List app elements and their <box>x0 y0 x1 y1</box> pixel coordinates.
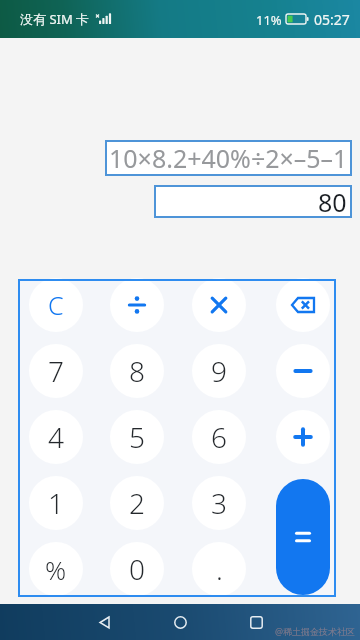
button[interactable] <box>276 344 330 398</box>
button[interactable]: 0 <box>110 542 164 596</box>
staticText: 9 <box>211 352 227 390</box>
staticText: 10×8.2+40%÷2×–5–1 <box>109 141 348 175</box>
button[interactable]: 5 <box>110 410 164 464</box>
staticText: 7 <box>48 352 64 390</box>
button[interactable]: % <box>29 542 83 596</box>
staticText: 5 <box>129 418 145 456</box>
staticText: 0 <box>129 550 145 588</box>
button[interactable] <box>90 608 118 636</box>
staticText: 3 <box>211 484 227 522</box>
button[interactable] <box>110 278 164 332</box>
button[interactable]: C <box>29 278 83 332</box>
button[interactable]: 8 <box>110 344 164 398</box>
button[interactable] <box>276 479 330 595</box>
button[interactable]: 10×8.2+40%÷2×–5–1 <box>105 140 352 176</box>
button[interactable] <box>276 410 330 464</box>
button[interactable] <box>242 608 270 636</box>
staticText: 没有 SIM 卡 <box>20 10 90 28</box>
button[interactable]: 80 <box>154 185 352 218</box>
staticText: 11% <box>256 11 282 29</box>
staticText: 2 <box>129 484 145 522</box>
staticText: C <box>48 288 64 322</box>
button[interactable] <box>276 278 330 332</box>
button[interactable]: 2 <box>110 476 164 530</box>
staticText: 6 <box>211 418 227 456</box>
staticText: 8 <box>129 352 145 390</box>
button[interactable] <box>192 278 246 332</box>
button[interactable]: 6 <box>192 410 246 464</box>
button[interactable]: . <box>192 542 246 596</box>
staticText: 1 <box>48 484 64 522</box>
button[interactable]: 7 <box>29 344 83 398</box>
button[interactable]: 3 <box>192 476 246 530</box>
button[interactable]: 4 <box>29 410 83 464</box>
staticText: 05:27 <box>314 10 350 29</box>
button[interactable] <box>166 608 194 636</box>
staticText: . <box>216 550 223 588</box>
button[interactable]: 1 <box>29 476 83 530</box>
button[interactable]: 9 <box>192 344 246 398</box>
staticText: % <box>45 552 67 587</box>
staticText: @稀土掘金技术社区 <box>275 625 356 637</box>
staticText: 80 <box>318 185 347 218</box>
staticText: 4 <box>48 418 64 456</box>
